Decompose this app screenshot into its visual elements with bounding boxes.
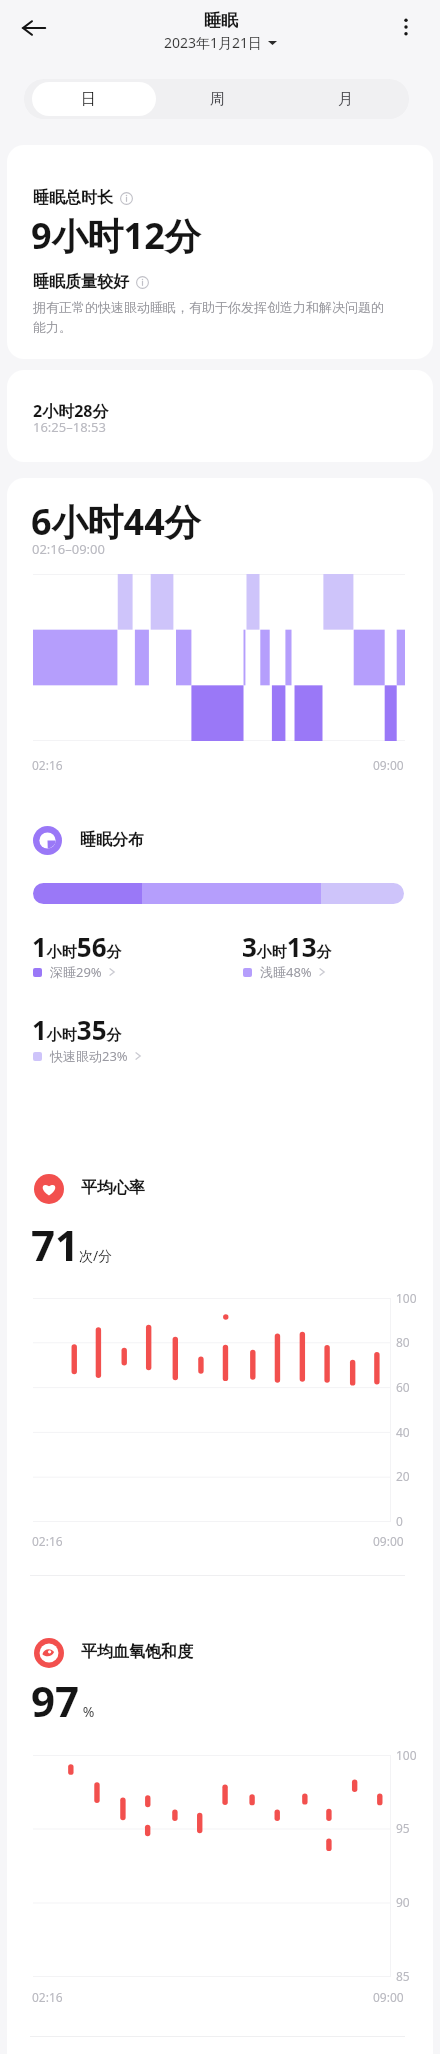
staticText: 1小时56分 bbox=[32, 929, 122, 964]
staticText: 平均心率 bbox=[81, 1178, 145, 1198]
staticText: 3小时13分 bbox=[242, 929, 332, 964]
staticText: 2小时28分 bbox=[33, 400, 109, 422]
button[interactable]: 月 bbox=[281, 79, 409, 119]
button[interactable]: 日 bbox=[24, 79, 153, 119]
staticText: 09:00 bbox=[373, 1533, 404, 1549]
button[interactable]: 周 bbox=[153, 79, 281, 119]
button[interactable]: 睡眠质量较好 bbox=[33, 272, 149, 292]
staticText: 浅睡48% bbox=[260, 963, 312, 981]
staticText: 睡眠总时长 bbox=[33, 188, 113, 208]
staticText: 100 bbox=[396, 1290, 417, 1306]
staticText: 90 bbox=[396, 1894, 410, 1910]
staticText: 睡眠质量较好 bbox=[33, 272, 129, 292]
button[interactable]: 2023年1月21日 bbox=[164, 33, 277, 52]
staticText: 1小时35分 bbox=[32, 1012, 122, 1047]
button[interactable]: 快速眼动23% bbox=[33, 1047, 143, 1065]
button[interactable]: 平均心率 bbox=[34, 1174, 145, 1204]
staticText: 9小时12分 bbox=[31, 211, 201, 260]
staticText: 09:00 bbox=[373, 757, 404, 773]
staticText: 0 bbox=[396, 1513, 403, 1529]
button[interactable]: Back bbox=[14, 8, 54, 48]
staticText: 02:16–09:00 bbox=[32, 540, 105, 558]
staticText: 快速眼动23% bbox=[50, 1047, 128, 1065]
button[interactable]: 睡眠分布 bbox=[33, 826, 144, 855]
staticText: 平均血氧饱和度 bbox=[81, 1642, 193, 1662]
staticText: 深睡29% bbox=[50, 963, 102, 981]
staticText: 月 bbox=[338, 90, 353, 109]
staticText: 40 bbox=[396, 1424, 410, 1440]
staticText: 周 bbox=[210, 90, 225, 109]
staticText: 16:25–18:53 bbox=[33, 418, 106, 436]
staticText: 95 bbox=[396, 1820, 410, 1836]
staticText: 拥有正常的快速眼动睡眠，有助于你发挥创造力和解决问题的能力。 bbox=[33, 299, 394, 336]
staticText: 85 bbox=[396, 1968, 410, 1984]
button[interactable]: 平均血氧饱和度 bbox=[34, 1638, 193, 1668]
staticText: 日 bbox=[81, 90, 96, 109]
button[interactable]: 浅睡48% bbox=[243, 963, 327, 981]
staticText: 6小时44分 bbox=[31, 497, 201, 546]
button[interactable]: More options bbox=[386, 7, 426, 47]
staticText: 100 bbox=[396, 1747, 417, 1763]
staticText: 71次/分 bbox=[31, 1216, 113, 1273]
staticText: 睡眠 bbox=[204, 10, 238, 31]
staticText: 2023年1月21日 bbox=[164, 33, 263, 52]
staticText: 20 bbox=[396, 1468, 410, 1484]
staticText: 睡眠分布 bbox=[80, 830, 144, 850]
staticText: 97 % bbox=[31, 1672, 95, 1729]
button[interactable]: 深睡29% bbox=[33, 963, 117, 981]
staticText: 02:16 bbox=[32, 1989, 63, 2005]
staticText: 80 bbox=[396, 1334, 410, 1350]
staticText: 02:16 bbox=[32, 1533, 63, 1549]
button[interactable]: 睡眠总时长 bbox=[33, 188, 133, 208]
staticText: 60 bbox=[396, 1379, 410, 1395]
staticText: 02:16 bbox=[32, 757, 63, 773]
staticText: 09:00 bbox=[373, 1989, 404, 2005]
